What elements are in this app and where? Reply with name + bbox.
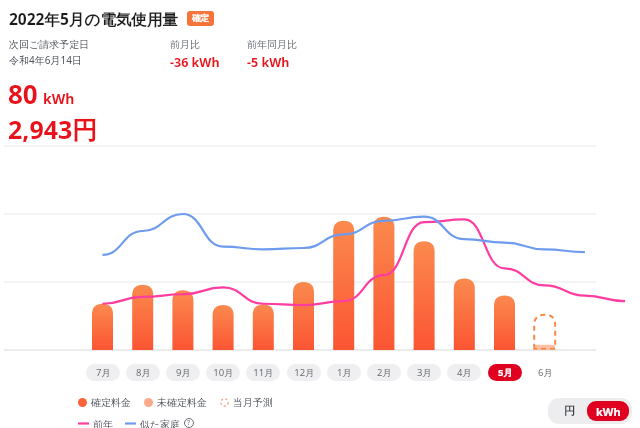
staticText: 5月 — [498, 366, 513, 379]
staticText: 2月 — [377, 366, 392, 379]
staticText: 2022年5月の電気使用量 — [9, 8, 178, 29]
staticText: 前年 — [93, 418, 113, 428]
button[interactable]: 9月 — [166, 364, 200, 381]
staticText: ? — [187, 418, 191, 428]
button[interactable]: 11月 — [246, 364, 280, 381]
staticText: -5 kWh — [247, 54, 290, 71]
button[interactable]: 5月 — [488, 364, 522, 381]
button[interactable]: 3月 — [407, 364, 441, 381]
staticText: 円 — [564, 404, 575, 418]
staticText: kWh — [43, 89, 75, 108]
staticText: 次回ご請求予定日 — [9, 38, 90, 51]
staticText: 前月比 — [170, 38, 200, 51]
staticText: 確定料金 — [91, 396, 131, 409]
staticText: 当月予測 — [233, 396, 273, 409]
staticText: 似た家庭 — [140, 418, 181, 428]
staticText: 未確定料金 — [157, 396, 207, 409]
staticText: 前年同月比 — [247, 38, 297, 51]
staticText: 80 — [8, 76, 38, 111]
staticText: 12月 — [294, 366, 315, 379]
button[interactable]: 12月 — [287, 364, 321, 381]
staticText: 2,943円 — [8, 112, 98, 146]
staticText: 7月 — [96, 366, 111, 379]
button[interactable]: 1月 — [327, 364, 361, 381]
button[interactable]: kWh — [587, 401, 629, 421]
staticText: 9月 — [176, 366, 191, 379]
staticText: -36 kWh — [170, 54, 220, 71]
button[interactable]: 8月 — [126, 364, 160, 381]
button[interactable]: 7月 — [86, 364, 120, 381]
button[interactable]: 4月 — [447, 364, 481, 381]
staticText: 11月 — [253, 366, 274, 379]
staticText: 令和4年6月14日 — [9, 53, 82, 67]
button[interactable]: 円 — [551, 401, 587, 421]
button[interactable]: 2月 — [367, 364, 401, 381]
staticText: 4月 — [457, 366, 472, 379]
staticText: 10月 — [213, 366, 234, 379]
button[interactable]: 似た家庭について — [184, 418, 194, 428]
staticText: kWh — [596, 404, 621, 419]
staticText: 6月 — [538, 366, 553, 379]
staticText: 8月 — [136, 366, 151, 379]
staticText: 1月 — [337, 366, 352, 379]
button[interactable]: 6月 — [528, 364, 562, 381]
staticText: 3月 — [417, 366, 432, 379]
button[interactable]: 確定 — [187, 11, 214, 26]
staticText: 確定 — [192, 13, 209, 24]
button[interactable]: 10月 — [206, 364, 240, 381]
